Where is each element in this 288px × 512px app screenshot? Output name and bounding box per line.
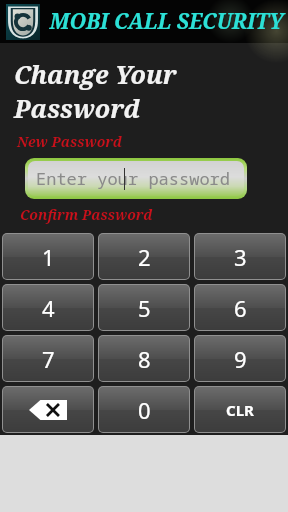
button[interactable]: Backspace [3,387,93,432]
staticText: 7 [42,344,55,374]
button[interactable]: 9 [195,336,285,381]
button[interactable]: 4 [3,285,93,330]
button[interactable]: 1 [3,234,93,279]
other: App logo [6,2,40,42]
button[interactable]: 7 [3,336,93,381]
button[interactable]: 8 [99,336,189,381]
staticText: CLR [226,400,254,420]
staticText: 0 [138,395,151,425]
staticText: 9 [234,344,247,374]
staticText: Confirm Password [20,205,153,224]
staticText: 2 [138,242,151,272]
staticText: Enter you [36,167,128,190]
button[interactable]: 5 [99,285,189,330]
button[interactable]: 0 [99,387,189,432]
staticText: 6 [234,293,247,323]
button[interactable]: CLR [195,387,285,432]
staticText: 1 [42,242,55,272]
staticText: Change Your Password [14,57,284,125]
button[interactable]: 6 [195,285,285,330]
button[interactable]: 2 [99,234,189,279]
staticText: 3 [234,242,247,272]
staticText: r password [128,167,230,190]
staticText: 5 [138,293,151,323]
staticText: 4 [42,293,55,323]
staticText: 8 [138,344,151,374]
button[interactable]: Enter you [28,161,244,196]
button[interactable]: 3 [195,234,285,279]
staticText: New Password [17,132,123,151]
staticText: MOBI CALL SECURITY [49,7,284,36]
